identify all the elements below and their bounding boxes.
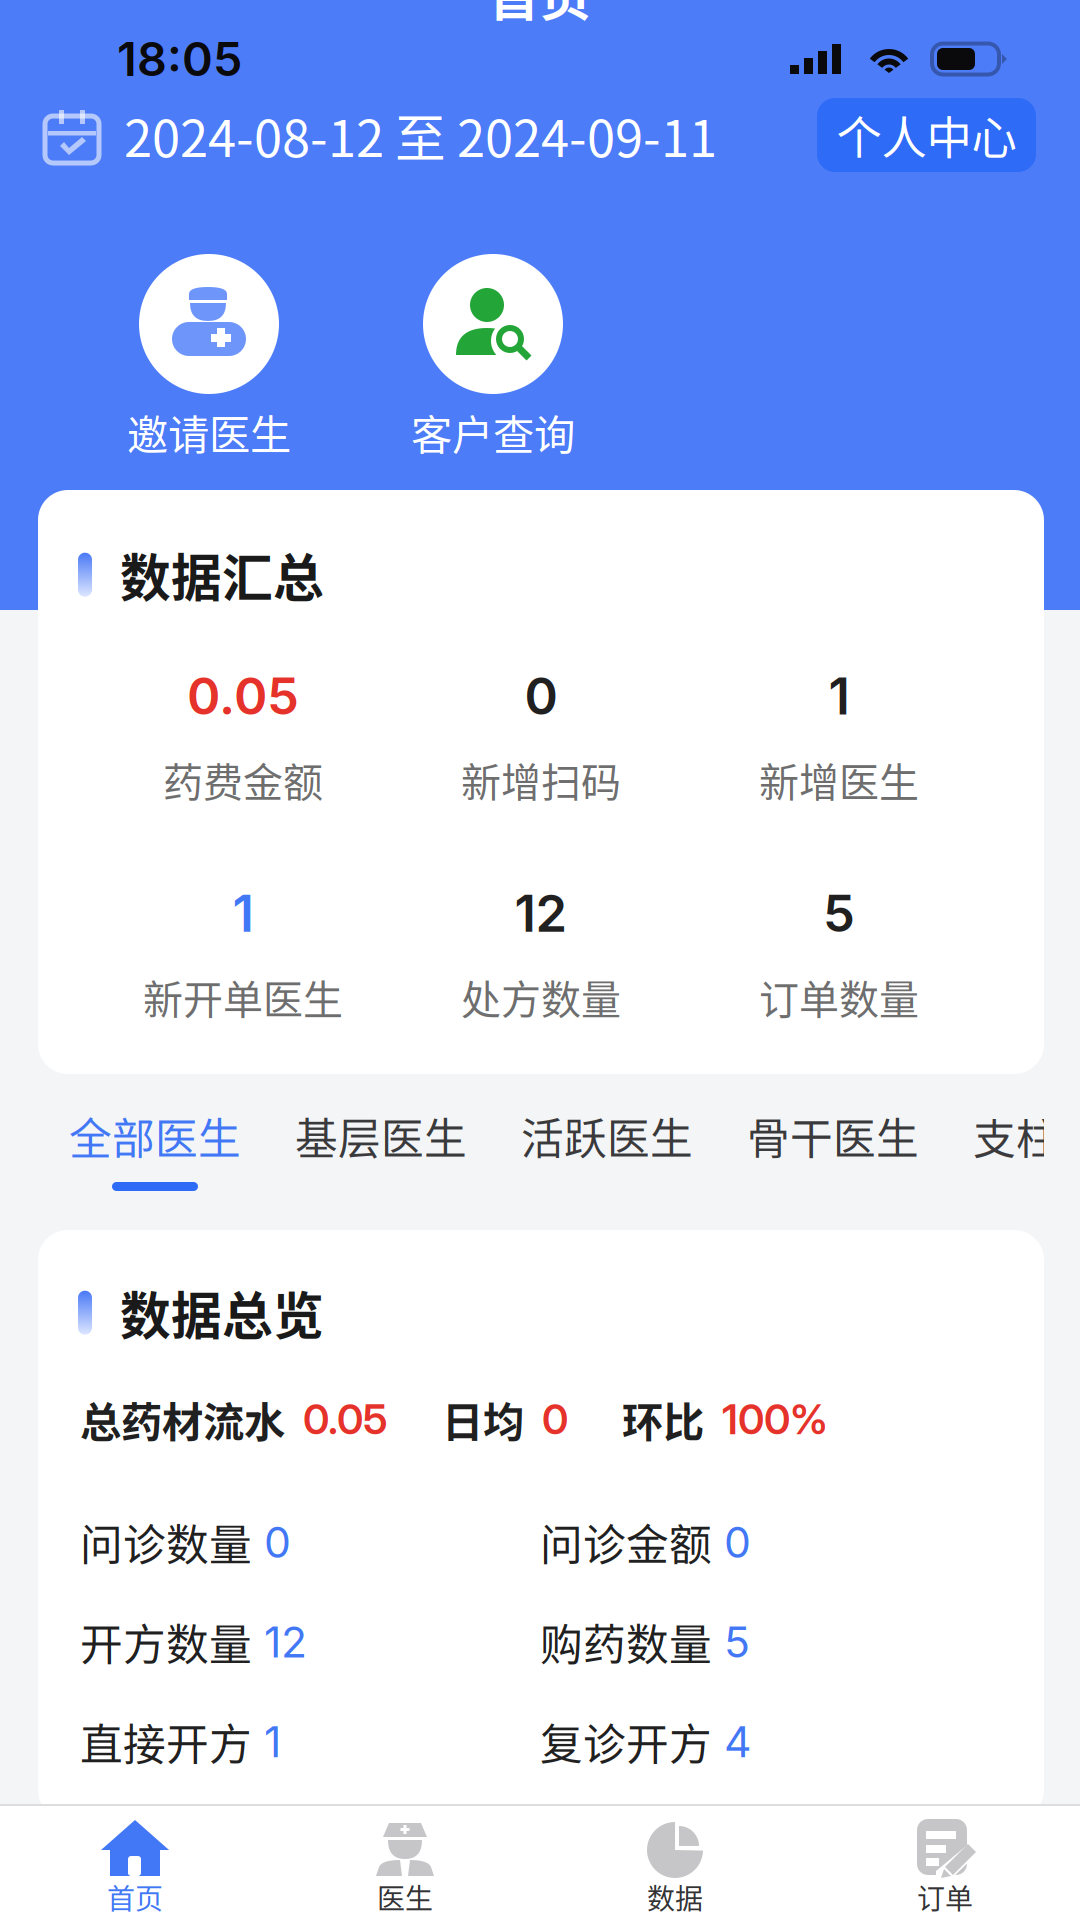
staticText: 活跃医生: [521, 1105, 693, 1167]
staticText: 问诊数量: [80, 1511, 252, 1573]
staticText: 订单数量: [759, 968, 919, 1026]
staticText: 100%: [704, 1394, 828, 1444]
staticText: 0: [252, 1516, 291, 1568]
staticText: 12: [252, 1616, 307, 1668]
staticText: 4: [712, 1716, 752, 1767]
staticText: 总药材流水: [80, 1389, 285, 1449]
staticText: 1: [828, 665, 849, 727]
staticText: 0.05: [187, 665, 299, 727]
staticText: 基层医生: [295, 1105, 467, 1167]
staticText: 新增扫码: [461, 751, 621, 809]
button[interactable]: 数据: [540, 1806, 810, 1920]
staticText: 0.05: [285, 1394, 388, 1444]
button[interactable]: 客户查询: [351, 254, 635, 462]
staticText: 新增医生: [759, 751, 919, 809]
button[interactable]: 医生: [270, 1806, 540, 1920]
button[interactable]: 邀请医生: [67, 254, 351, 462]
staticText: 医生: [377, 1877, 433, 1917]
button[interactable]: 支柱医生: [946, 1093, 1080, 1203]
staticText: 0: [524, 665, 557, 727]
staticText: 开方数量: [80, 1611, 252, 1673]
button[interactable]: 个人中心: [817, 98, 1036, 172]
staticText: 首页: [489, 0, 591, 31]
staticText: 支柱医生: [973, 1105, 1080, 1167]
staticText: 数据总览: [120, 1276, 324, 1349]
staticText: 购药数量: [540, 1611, 712, 1673]
staticText: 5: [712, 1616, 750, 1668]
staticText: 客户查询: [411, 402, 575, 462]
button[interactable]: 选择日期范围 2024-08-12 至 2024-09-11: [44, 98, 717, 172]
staticText: 环比: [568, 1389, 704, 1449]
staticText: 1: [232, 883, 253, 944]
button[interactable]: 骨干医生: [720, 1093, 946, 1203]
staticText: 邀请医生: [127, 402, 291, 462]
staticText: 18:05: [117, 31, 242, 87]
staticText: 个人中心: [836, 102, 1016, 168]
staticText: 0: [712, 1516, 751, 1568]
button[interactable]: 首页: [0, 1806, 270, 1920]
button[interactable]: 订单: [810, 1806, 1080, 1920]
staticText: 药费金额: [163, 751, 323, 809]
staticText: 数据: [647, 1877, 703, 1917]
staticText: 日均: [388, 1389, 524, 1449]
staticText: 1: [252, 1716, 281, 1767]
staticText: 5: [823, 883, 855, 944]
staticText: 骨干医生: [747, 1105, 919, 1167]
staticText: 问诊金额: [540, 1511, 712, 1573]
staticText: 订单: [917, 1877, 973, 1917]
button[interactable]: 活跃医生: [494, 1093, 720, 1203]
staticText: 处方数量: [461, 968, 621, 1026]
staticText: 新开单医生: [143, 968, 343, 1026]
staticText: 复诊开方: [540, 1711, 712, 1773]
staticText: 2024-08-12 至 2024-09-11: [124, 98, 717, 172]
staticText: 直接开方: [80, 1711, 252, 1773]
staticText: 数据汇总: [120, 538, 324, 611]
button[interactable]: 基层医生: [268, 1093, 494, 1203]
staticText: 12: [514, 883, 567, 944]
staticText: 全部医生: [69, 1105, 241, 1167]
staticText: 首页: [107, 1877, 163, 1917]
staticText: 0: [524, 1394, 568, 1444]
button[interactable]: 全部医生: [42, 1093, 268, 1203]
